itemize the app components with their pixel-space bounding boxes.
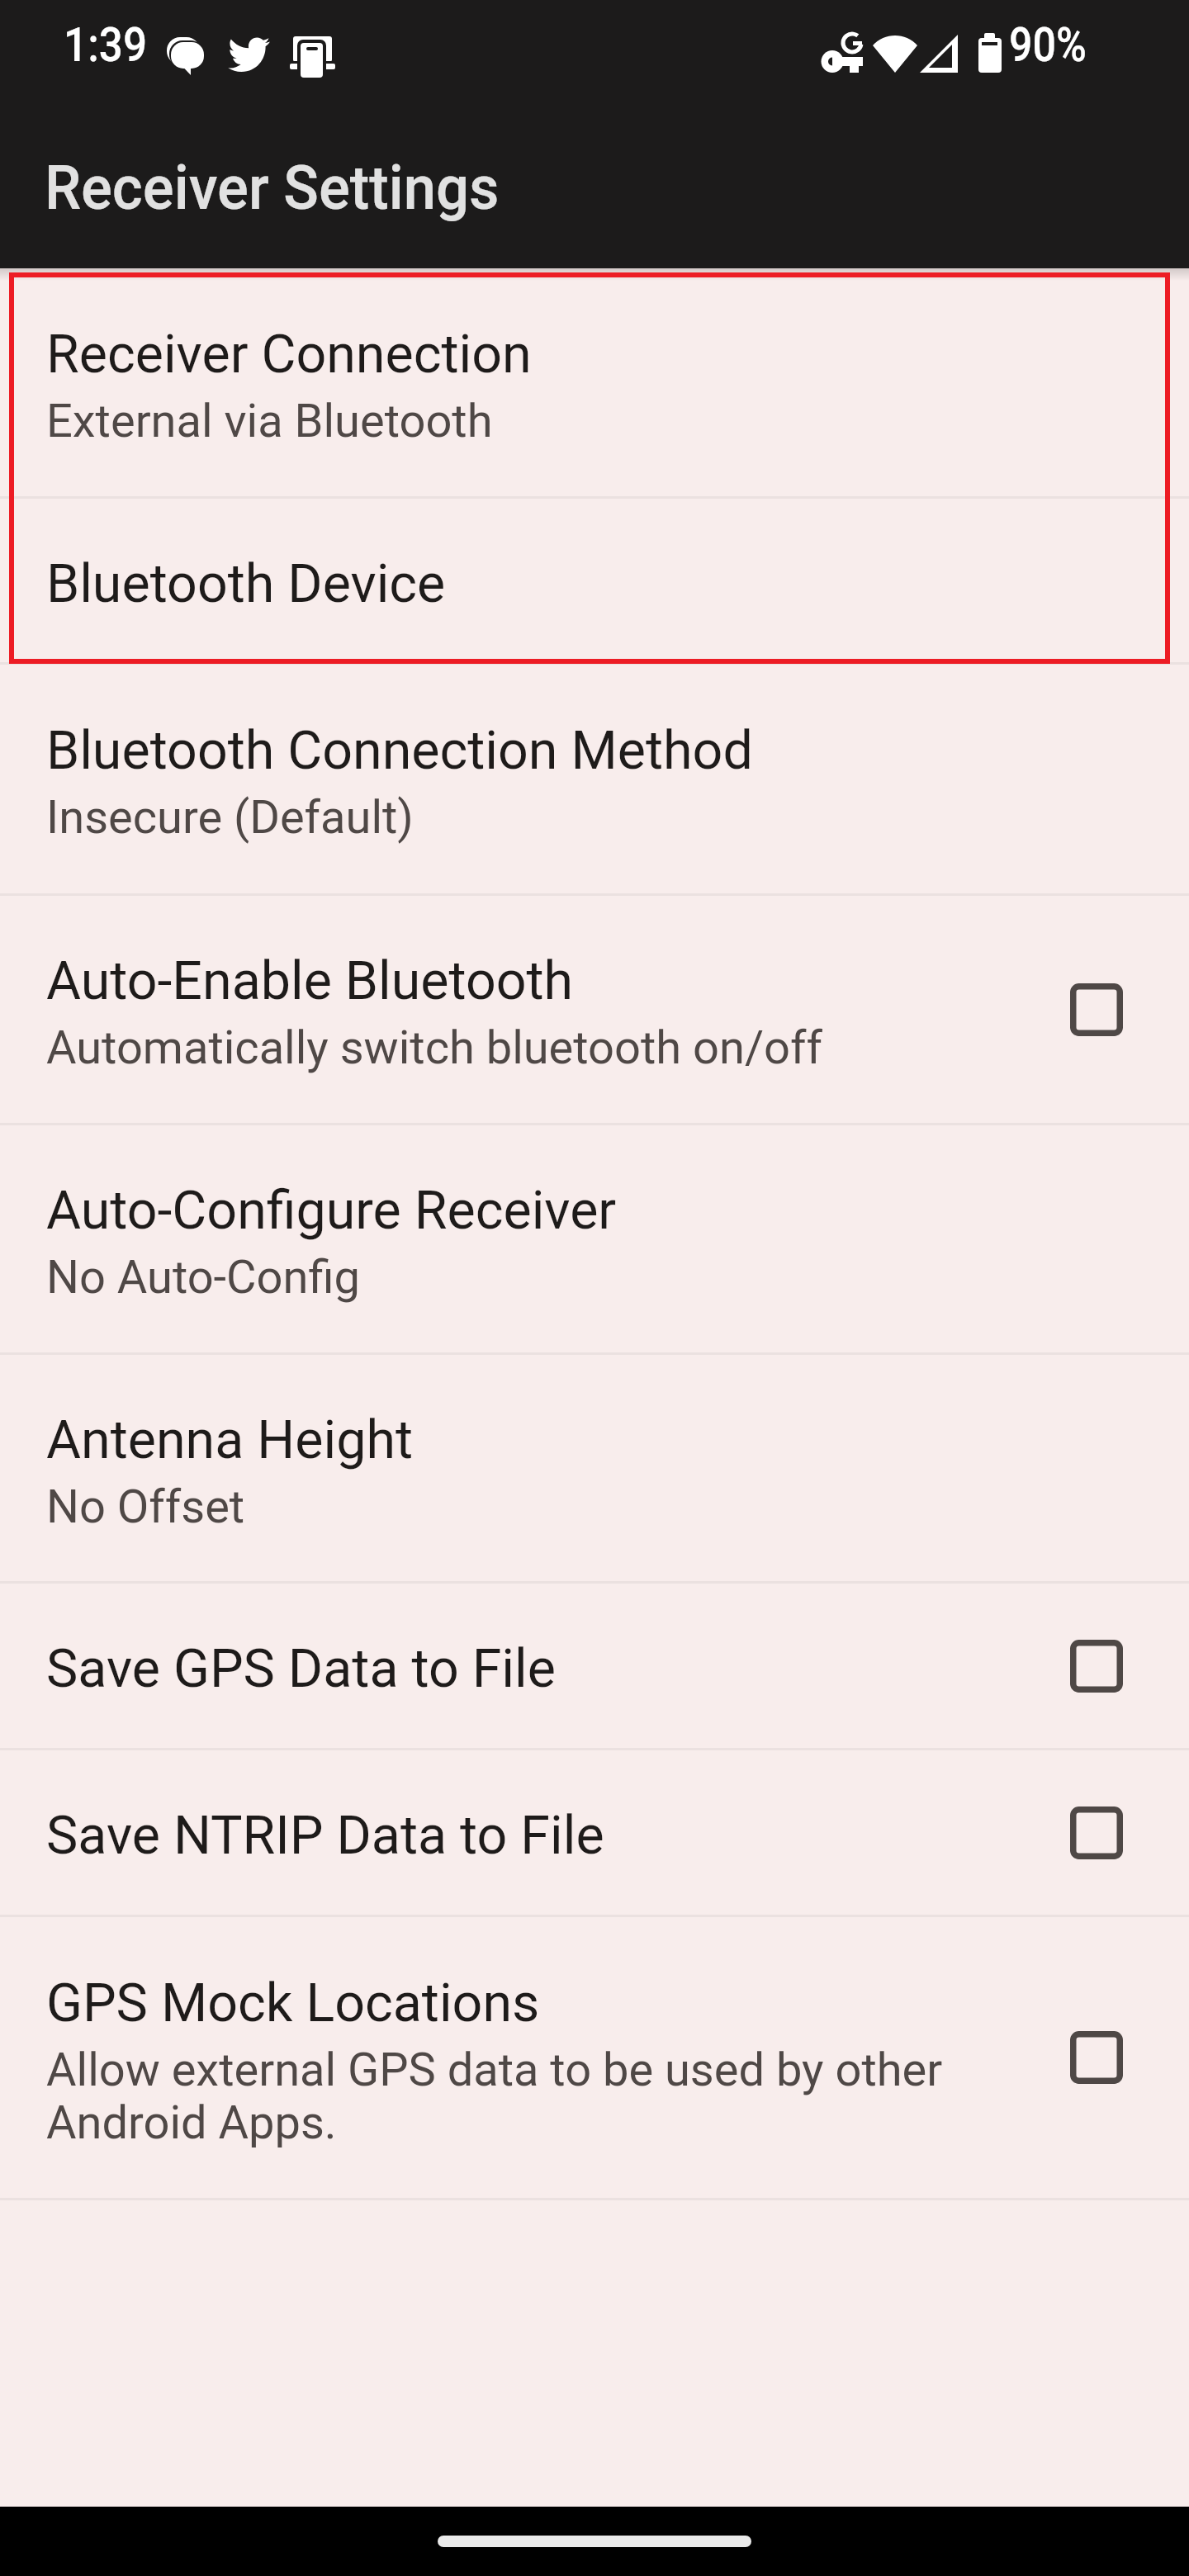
button[interactable]: GPS Mock Locations [0, 1917, 1189, 2198]
staticText: Receiver Settings [45, 151, 499, 224]
button[interactable]: Toggle GPS Mock Locations [1070, 2031, 1123, 2084]
button[interactable]: Auto-Enable Bluetooth [0, 896, 1189, 1123]
staticText: Bluetooth Connection Method [46, 719, 753, 782]
staticText: Save NTRIP Data to File [46, 1804, 604, 1867]
staticText: Save GPS Data to File [46, 1637, 556, 1700]
staticText: No Offset [46, 1480, 245, 1534]
staticText: Receiver Connection [46, 323, 532, 386]
button[interactable]: Toggle Save NTRIP Data to File [1070, 1807, 1123, 1859]
staticText: Insecure (Default) [46, 790, 414, 845]
staticText: Automatically switch bluetooth on/off [46, 1020, 822, 1075]
staticText: No Auto-Config [46, 1250, 360, 1305]
button[interactable]: Toggle Save GPS Data to File [1070, 1640, 1123, 1693]
staticText: Bluetooth Device [46, 552, 446, 615]
staticText: External via Bluetooth [46, 394, 493, 448]
button[interactable]: Toggle Auto-Enable Bluetooth [1070, 983, 1123, 1036]
staticText: Allow external GPS data to be used by ot… [46, 2043, 1050, 2149]
staticText: Auto-Enable Bluetooth [46, 949, 574, 1012]
staticText: GPS Mock Locations [46, 1972, 540, 2034]
staticText: 1:39 [64, 17, 148, 73]
staticText: 90% [1009, 17, 1087, 73]
staticText: Auto-Configure Receiver [46, 1179, 617, 1242]
button[interactable]: Save NTRIP Data to File [0, 1750, 1189, 1915]
button[interactable]: Antenna Height [0, 1355, 1189, 1581]
button[interactable]: Receiver Connection [0, 268, 1189, 496]
button[interactable]: Bluetooth Device [0, 499, 1189, 662]
button[interactable]: Save GPS Data to File [0, 1584, 1189, 1748]
staticText: Antenna Height [46, 1409, 414, 1471]
button[interactable]: Auto-Configure Receiver [0, 1125, 1189, 1352]
button[interactable]: Bluetooth Connection Method [0, 665, 1189, 893]
